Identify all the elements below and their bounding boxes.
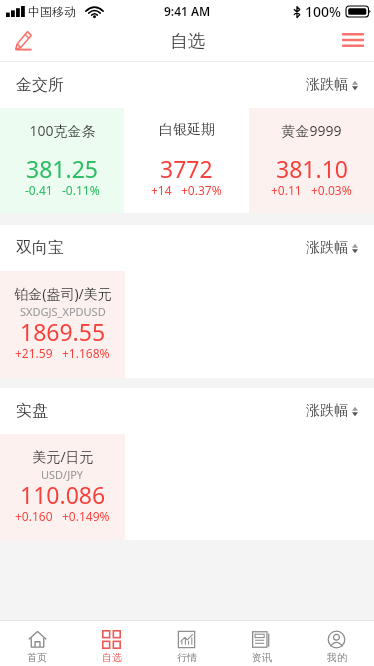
staticText: USD/JPY xyxy=(41,467,84,482)
staticText: +14 xyxy=(151,182,172,198)
staticText: 资讯 xyxy=(252,651,272,664)
button[interactable]: 自选 xyxy=(74,621,149,666)
staticText: +0.149% xyxy=(62,508,110,524)
staticText: 9:41 AM xyxy=(164,3,211,19)
staticText: 铂金(盎司)/美元 xyxy=(14,284,112,303)
staticText: 110.086 xyxy=(20,479,106,510)
staticText: 381.25 xyxy=(26,153,98,184)
button[interactable]: 美元/日元 xyxy=(0,434,125,540)
staticText: +0.37% xyxy=(181,182,222,198)
staticText: 实盘 xyxy=(16,401,48,421)
button[interactable]: 黄金9999 xyxy=(249,108,374,213)
staticText: 白银延期 xyxy=(159,121,215,139)
staticText: 行情 xyxy=(177,651,197,664)
button[interactable]: 资讯 xyxy=(224,621,299,666)
staticText: 美元/日元 xyxy=(32,447,94,466)
staticText: 中国移动 xyxy=(28,4,76,19)
staticText: 我的 xyxy=(327,651,347,664)
button[interactable]: Menu xyxy=(332,22,374,61)
button[interactable]: 涨跌幅 xyxy=(306,402,358,420)
button[interactable]: 铂金(盎司)/美元 xyxy=(0,271,125,378)
staticText: +1.168% xyxy=(62,345,110,361)
button[interactable]: 行情 xyxy=(149,621,224,666)
button[interactable]: 涨跌幅 xyxy=(306,239,358,257)
button[interactable]: Edit xyxy=(0,22,47,61)
staticText: 3772 xyxy=(160,153,213,184)
staticText: +0.03% xyxy=(311,182,352,198)
staticText: SXDGJS_XPDUSD xyxy=(20,304,106,319)
button[interactable]: 涨跌幅 xyxy=(306,76,358,94)
staticText: 涨跌幅 xyxy=(306,402,348,420)
staticText: 涨跌幅 xyxy=(306,239,348,257)
staticText: +0.11 xyxy=(271,182,302,198)
button[interactable]: 100克金条 xyxy=(0,108,124,213)
staticText: 黄金9999 xyxy=(281,121,342,140)
button[interactable]: 白银延期 xyxy=(124,108,249,213)
staticText: -0.11% xyxy=(62,182,100,198)
staticText: 金交所 xyxy=(16,75,64,95)
button[interactable]: 我的 xyxy=(299,621,374,666)
staticText: +0.160 xyxy=(15,508,53,524)
staticText: 100% xyxy=(305,2,341,21)
button[interactable]: 首页 xyxy=(0,621,74,666)
staticText: 381.10 xyxy=(276,153,348,184)
staticText: +21.59 xyxy=(15,345,53,361)
staticText: 双向宝 xyxy=(16,238,64,258)
staticText: 自选 xyxy=(170,30,205,52)
staticText: 100克金条 xyxy=(29,121,96,140)
staticText: 自选 xyxy=(102,651,122,664)
staticText: 首页 xyxy=(27,651,47,664)
staticText: 1869.55 xyxy=(20,316,106,347)
staticText: 涨跌幅 xyxy=(306,76,348,94)
staticText: -0.41 xyxy=(25,182,53,198)
